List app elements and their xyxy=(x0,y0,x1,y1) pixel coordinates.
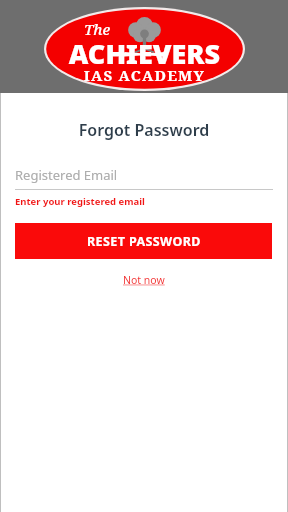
button[interactable]: Not now xyxy=(117,270,171,290)
staticText: Forgot Password xyxy=(0,119,288,141)
staticText: IAS ACADEMY xyxy=(44,65,245,85)
staticText: RESET PASSWORD xyxy=(87,233,201,250)
button[interactable]: Registered Email xyxy=(0,162,288,190)
button[interactable]: RESET PASSWORD xyxy=(15,223,272,259)
staticText: The xyxy=(84,19,111,39)
staticText: Enter your registered email xyxy=(15,195,145,208)
staticText: Registered Email xyxy=(15,166,118,184)
staticText: ACHIEVERS xyxy=(44,35,245,72)
staticText: Not now xyxy=(123,273,165,287)
